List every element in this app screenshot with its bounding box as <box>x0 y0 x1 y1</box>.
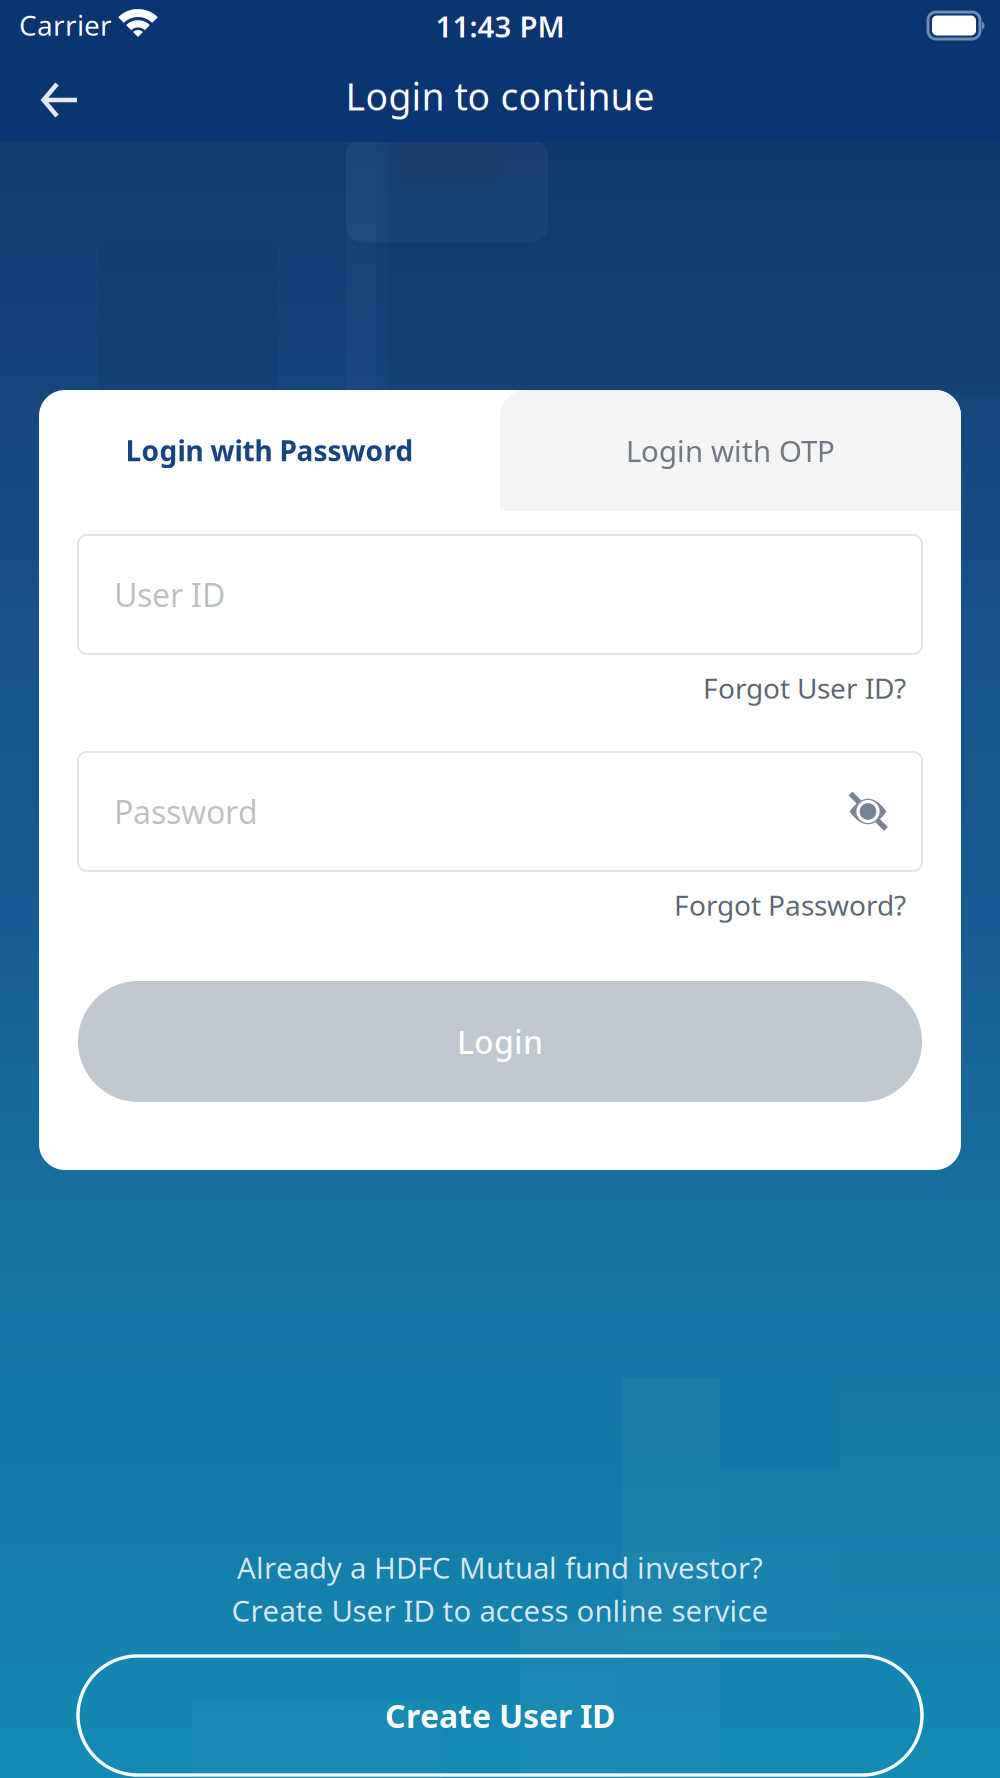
staticText: Login with OTP <box>626 431 835 470</box>
button[interactable]: Forgot Password? <box>646 883 906 927</box>
staticText: Forgot User ID? <box>703 669 906 707</box>
staticText: Forgot Password? <box>674 886 906 924</box>
button[interactable]: Create User ID <box>78 1656 922 1775</box>
staticText: Password <box>114 790 258 833</box>
staticText: Create User ID to access online service <box>231 1591 768 1630</box>
button[interactable]: Login with Password <box>39 390 500 511</box>
button[interactable]: Forgot User ID? <box>666 666 906 710</box>
staticText: Carrier <box>19 6 112 44</box>
staticText: Already a HDFC Mutual fund investor? <box>237 1548 763 1587</box>
staticText: Login to continue <box>345 71 654 121</box>
staticText: 11:43 PM <box>435 6 564 45</box>
staticText: User ID <box>114 573 225 616</box>
button[interactable]: Login with OTP <box>500 390 961 511</box>
button[interactable]: Show password <box>830 773 906 849</box>
staticText: Login <box>457 1020 543 1063</box>
button[interactable]: Back <box>18 56 102 146</box>
staticText: Create User ID <box>385 1694 615 1737</box>
button[interactable]: Login <box>78 981 922 1102</box>
staticText: Login with Password <box>125 432 413 469</box>
